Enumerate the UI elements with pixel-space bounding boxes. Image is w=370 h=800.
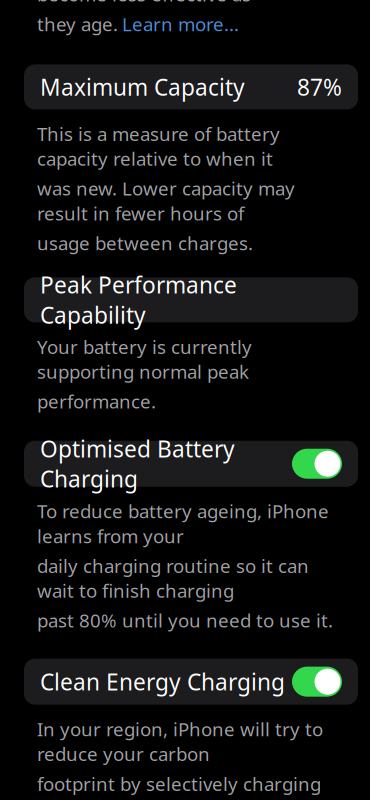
staticText: was new. Lower capacity may result in fe… [37,176,295,226]
staticText: daily charging routine so it can wait to… [37,553,309,603]
staticText: This is a measure of battery capacity re… [37,121,280,171]
staticText: Peak Performance Capability [40,270,237,330]
staticText: consumable components that become less e… [37,0,300,7]
staticText: Learn more... [122,12,239,36]
staticText: Clean Energy Charging [40,667,285,697]
button[interactable]: Clean Energy Charging [24,659,358,705]
staticText: usage between charges. [37,230,253,255]
staticText: past 80% until you need to use it. [37,608,333,633]
staticText: 87% [297,72,342,102]
staticText: footprint by selectively charging when l… [37,771,321,800]
button[interactable]: Peak Performance Capability [24,277,358,322]
staticText: they age. [37,12,118,36]
staticText: Your battery is currently supporting nor… [37,334,252,384]
staticText: Maximum Capacity [40,72,245,102]
staticText: Optimised Battery Charging [40,434,235,494]
staticText: performance. [37,389,156,414]
staticText: To reduce battery ageing, iPhone learns … [37,499,329,548]
button[interactable]: Learn more... [122,12,239,36]
button[interactable]: Optimised Battery Charging [24,441,358,487]
button[interactable]: Maximum Capacity [24,64,358,109]
staticText: In your region, iPhone will try to reduc… [37,717,323,766]
